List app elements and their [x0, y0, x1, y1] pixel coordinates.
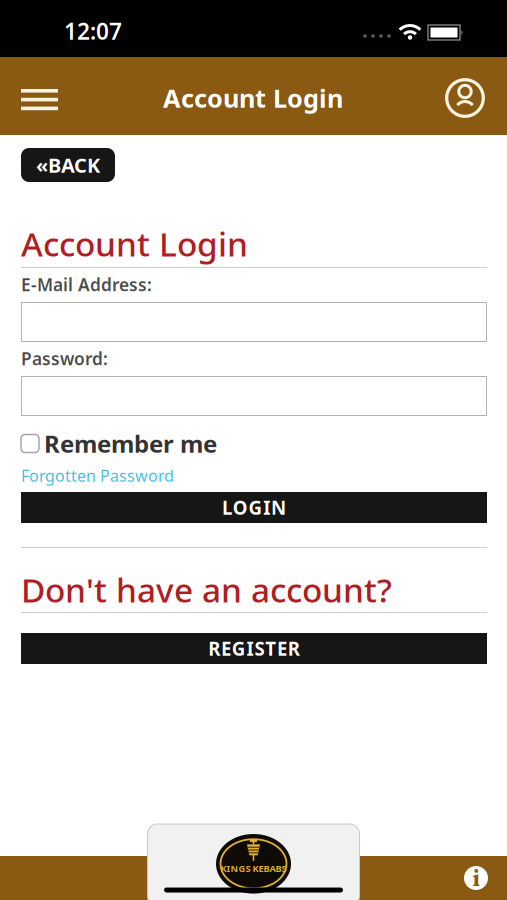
staticText: Don't have an account? [21, 567, 392, 612]
staticText: Forgotten Password [21, 465, 174, 486]
staticText: Account Login [21, 221, 248, 266]
staticText: 12:07 [64, 16, 122, 46]
button[interactable]: Menu [19, 76, 61, 120]
staticText: REGISTER [208, 636, 300, 661]
button[interactable]: «BACK [21, 148, 115, 182]
button[interactable]: Password: [21, 376, 487, 416]
staticText: Remember me [44, 428, 217, 459]
button[interactable]: Account [441, 74, 489, 122]
staticText: i [472, 862, 479, 894]
staticText: «BACK [36, 152, 100, 178]
staticText: Password: [21, 347, 108, 370]
staticText: LOGIN [222, 495, 286, 520]
staticText: KINGS KEBABS [220, 862, 286, 875]
button[interactable]: REGISTER [21, 633, 487, 664]
button[interactable]: Info [464, 866, 488, 890]
staticText: Account Login [163, 81, 343, 115]
button[interactable]: LOGIN [21, 492, 487, 523]
button[interactable]: E-Mail Address: [21, 302, 487, 342]
staticText: E-Mail Address: [21, 273, 152, 296]
button[interactable]: Remember me [21, 432, 217, 455]
button[interactable]: Forgotten Password [21, 468, 174, 483]
